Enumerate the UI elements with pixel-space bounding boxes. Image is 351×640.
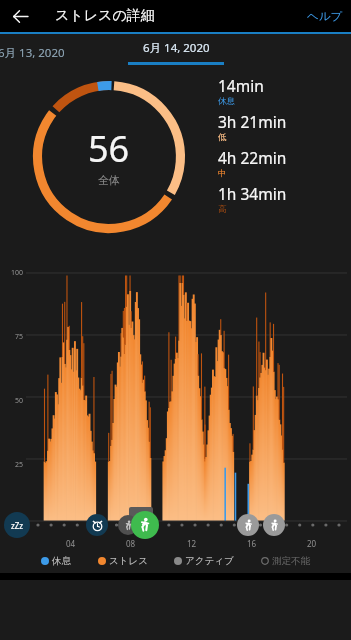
button[interactable]: Walk bbox=[237, 514, 259, 536]
button[interactable]: アクティブ bbox=[174, 555, 234, 567]
button[interactable]: 休息 bbox=[41, 555, 71, 567]
button[interactable]: ヘルプ bbox=[307, 0, 343, 32]
staticText: ヘルプ bbox=[307, 9, 343, 23]
button[interactable]: Alarm bbox=[86, 514, 108, 536]
staticText: アクティブ bbox=[185, 555, 234, 567]
staticText: ストレスの詳細 bbox=[55, 7, 155, 25]
staticText: 4h 22min bbox=[218, 147, 287, 168]
staticText: 08 bbox=[126, 538, 136, 549]
staticText: 56 bbox=[88, 124, 130, 173]
button[interactable]: 測定不能 bbox=[261, 555, 310, 567]
staticText: 6月 14, 2020 bbox=[143, 40, 210, 56]
button[interactable]: 6月 13, 2020 bbox=[0, 34, 112, 71]
button[interactable]: Activity bbox=[118, 515, 138, 535]
staticText: 20 bbox=[307, 538, 317, 549]
staticText: 12 bbox=[187, 538, 197, 549]
staticText: 中 bbox=[218, 168, 227, 179]
staticText: 75 bbox=[15, 332, 24, 342]
staticText: 1h 34min bbox=[218, 183, 287, 204]
staticText: 休息 bbox=[52, 555, 71, 567]
staticText: 全体 bbox=[98, 173, 120, 187]
button[interactable]: 6月 14, 2020 bbox=[111, 34, 241, 71]
button[interactable]: ストレス bbox=[98, 555, 148, 567]
staticText: 25 bbox=[15, 460, 24, 470]
staticText: ストレス bbox=[109, 555, 148, 567]
staticText: 休息 bbox=[218, 96, 235, 107]
staticText: 高 bbox=[218, 204, 227, 215]
staticText: 6月 13, 2020 bbox=[0, 45, 65, 61]
staticText: zZz bbox=[11, 520, 24, 531]
staticText: 低 bbox=[218, 132, 227, 143]
staticText: 16 bbox=[247, 538, 257, 549]
staticText: 3h 21min bbox=[218, 111, 287, 132]
staticText: 50 bbox=[15, 396, 24, 406]
button[interactable]: Run bbox=[131, 511, 159, 539]
staticText: 04 bbox=[66, 538, 76, 549]
button[interactable]: Sleep bbox=[4, 512, 30, 538]
button[interactable]: Walk bbox=[263, 514, 285, 536]
staticText: 14min bbox=[218, 75, 264, 96]
staticText: 測定不能 bbox=[272, 555, 310, 567]
button[interactable]: Back bbox=[5, 1, 35, 31]
staticText: 100 bbox=[11, 268, 24, 278]
